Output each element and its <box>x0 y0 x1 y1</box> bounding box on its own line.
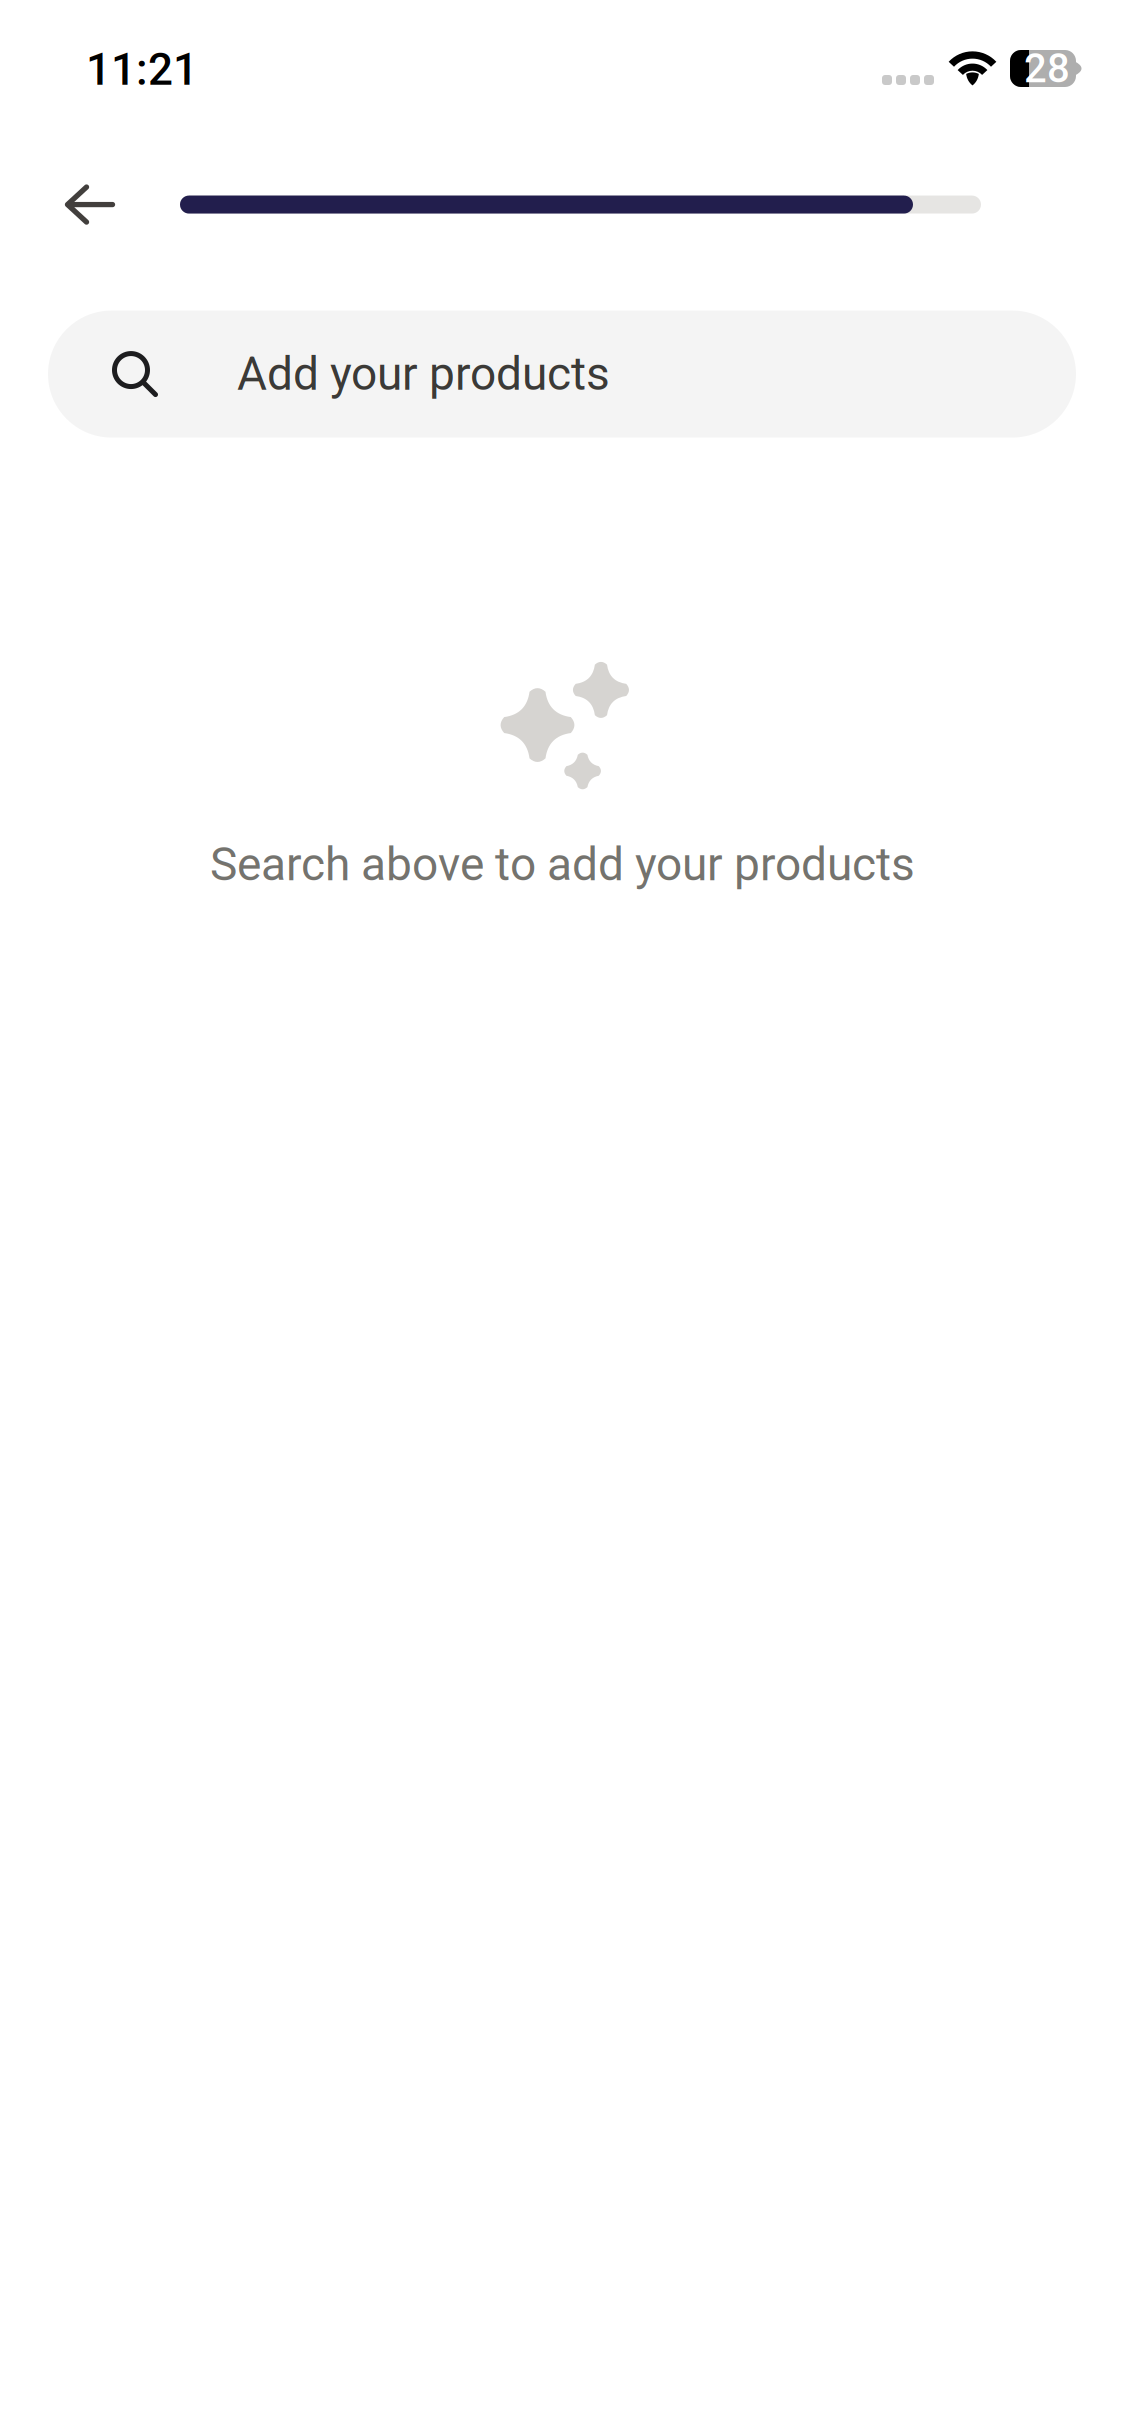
staticText: Search above to add your products <box>210 838 915 891</box>
button[interactable]: Back <box>33 148 147 262</box>
staticText: 28 <box>1024 45 1070 92</box>
staticText: Add your products <box>237 347 610 401</box>
button[interactable]: Add your products <box>48 311 1076 438</box>
staticText: 11:21 <box>86 44 198 96</box>
